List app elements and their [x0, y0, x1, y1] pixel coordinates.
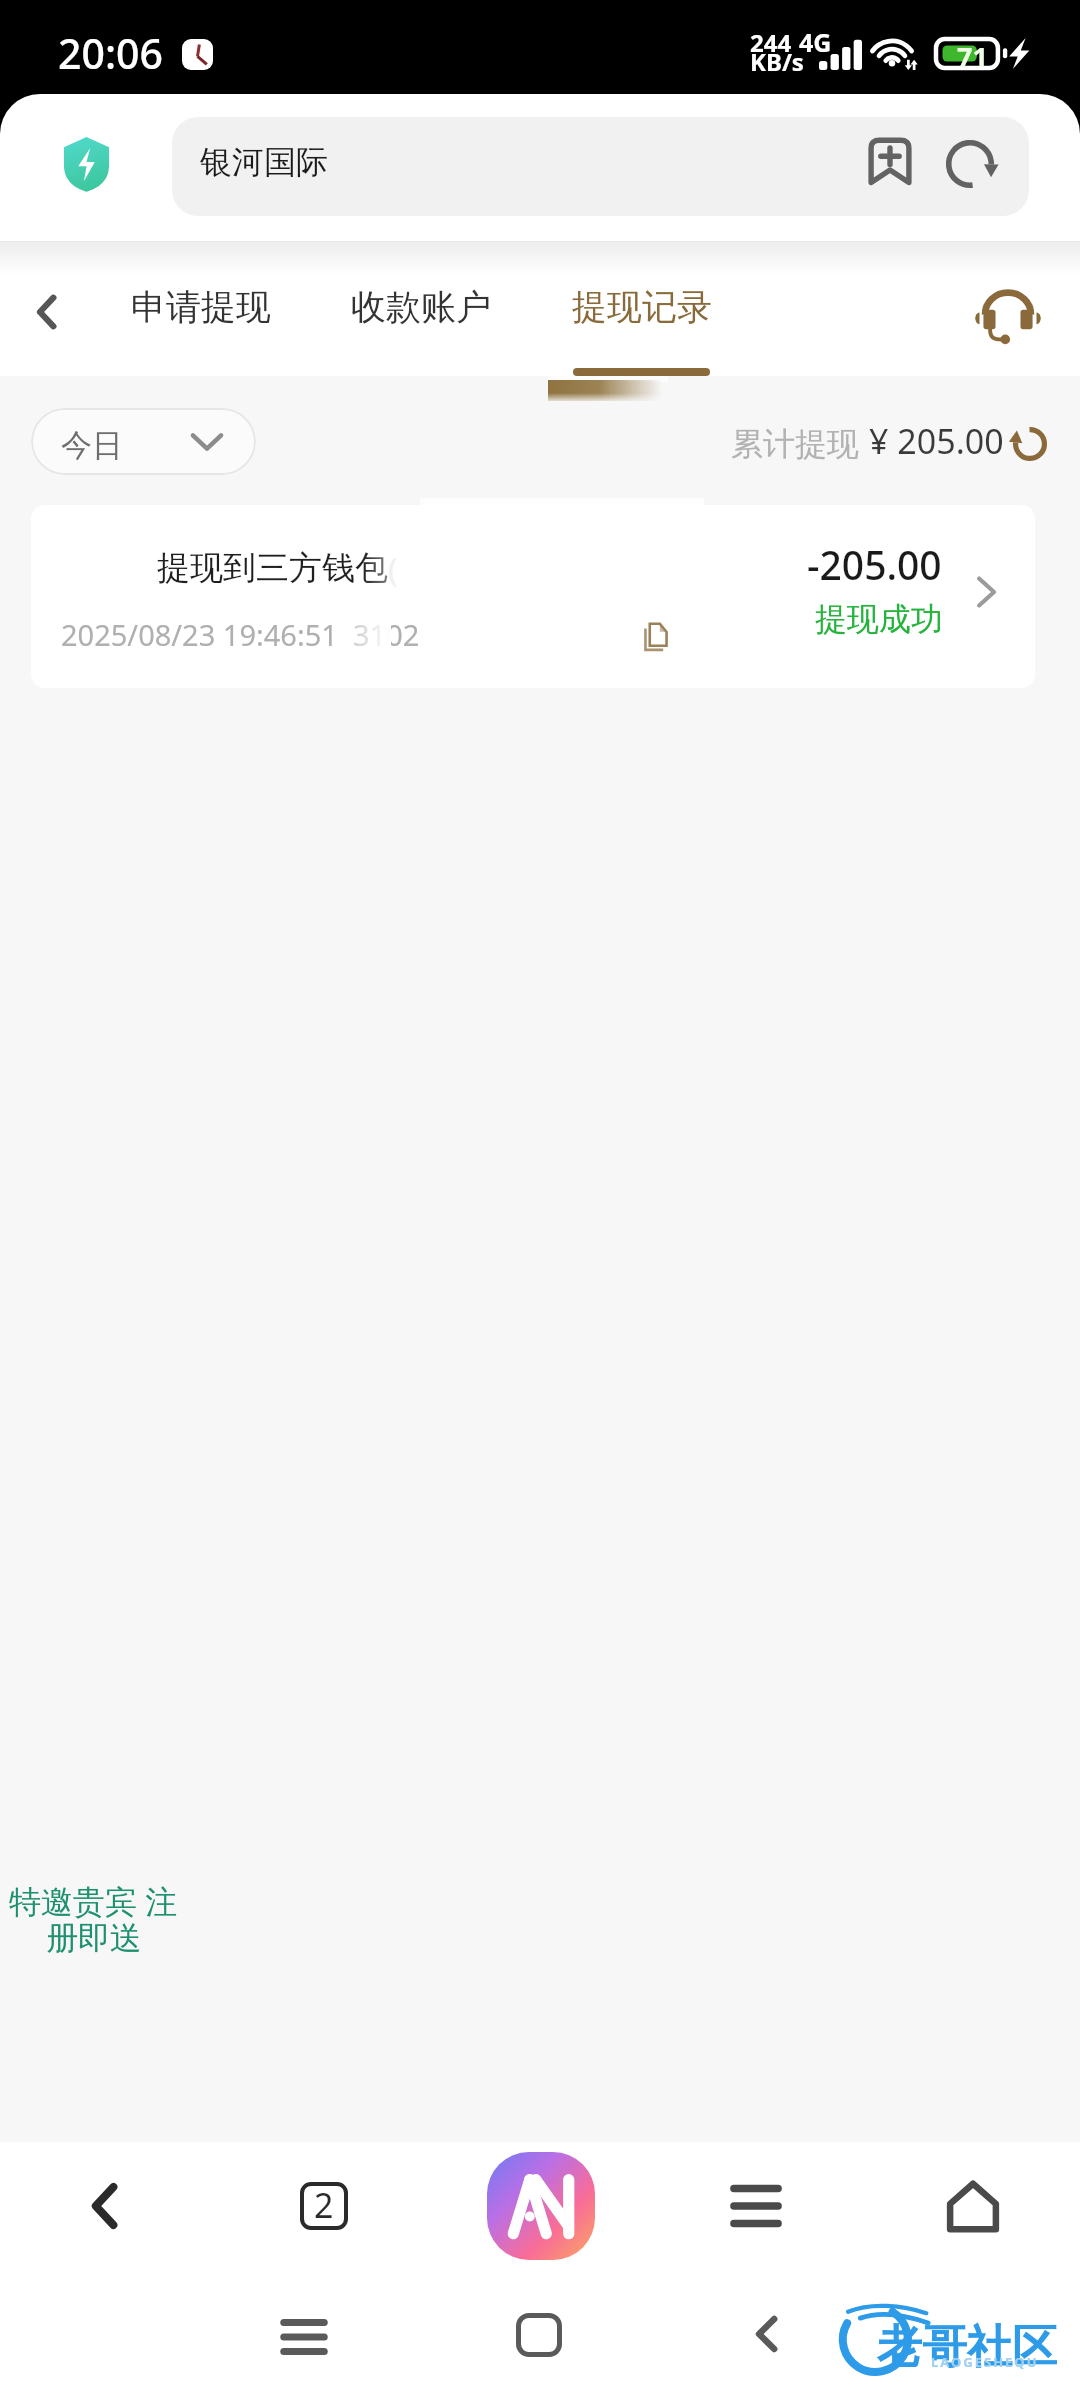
staticText: 244 [750, 26, 792, 59]
staticText: 银河国际 [200, 142, 328, 182]
button[interactable]: Recents [256, 2305, 352, 2369]
staticText: 20:06 [58, 25, 163, 81]
staticText: ¥ 205.00 [869, 418, 1004, 464]
button[interactable]: 提现记录 [550, 256, 734, 360]
staticText: 收款账户 [351, 285, 491, 329]
staticText: 累计提现 [731, 424, 859, 464]
button[interactable]: 提现到三方钱包 [31, 505, 1035, 688]
staticText: 提现到三方钱包 [157, 547, 388, 589]
button[interactable]: Back [719, 2302, 815, 2366]
staticText: 71 [957, 38, 988, 75]
staticText: 2025/08/23 19:46:51 3102 [61, 615, 420, 654]
staticText: 提现成功 [815, 599, 943, 639]
staticText: 今日 [61, 426, 123, 465]
button[interactable]: Home [491, 2303, 587, 2367]
button[interactable]: Menu [696, 2129, 816, 2283]
button[interactable]: Refresh total [1011, 425, 1049, 463]
button[interactable]: Tabs [264, 2129, 384, 2283]
staticText: 册即送 [46, 1918, 142, 1958]
staticText: -205.00 [807, 538, 942, 591]
staticText: 老哥社区 [877, 2319, 1057, 2376]
staticText: 提现记录 [572, 285, 712, 329]
button[interactable]: Customer service [966, 274, 1050, 358]
staticText: LAOGESHEQU [931, 2353, 1039, 2371]
button[interactable]: Back [11, 276, 83, 348]
staticText: 4G [799, 25, 832, 59]
staticText: 特邀贵宾 注 [9, 1879, 178, 1923]
button[interactable]: 银河国际 [172, 117, 1029, 216]
button[interactable]: Home [913, 2129, 1033, 2283]
button[interactable]: Site security [50, 126, 122, 198]
staticText: 2 [314, 2182, 334, 2228]
staticText: KB/s [750, 45, 804, 78]
staticText: 申请提现 [131, 285, 271, 329]
button[interactable]: 申请提现 [109, 256, 293, 360]
button[interactable]: Refresh page [942, 136, 998, 192]
button[interactable]: AI assistant [481, 2129, 601, 2283]
button[interactable]: Add bookmark [863, 136, 917, 190]
staticText: ( [388, 547, 398, 592]
button[interactable]: Back [45, 2129, 165, 2283]
button[interactable]: 收款账户 [329, 256, 513, 360]
button[interactable]: 今日 [31, 408, 256, 475]
